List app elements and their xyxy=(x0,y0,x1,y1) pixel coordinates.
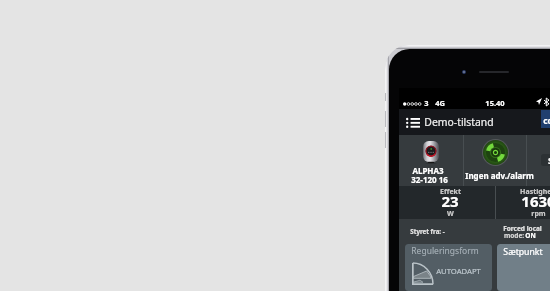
staticText: 15.40 xyxy=(485,98,505,108)
staticText: 23 xyxy=(441,191,459,211)
staticText: S xyxy=(548,154,550,166)
button[interactable]: Menu xyxy=(400,109,425,135)
staticText: Forced local xyxy=(503,224,542,233)
staticText: W xyxy=(447,209,454,219)
staticText: co xyxy=(543,115,550,127)
staticText: ON xyxy=(525,231,536,240)
staticText: Demo-tilstand xyxy=(424,115,494,129)
staticText: Styret fra: - xyxy=(410,227,445,235)
button[interactable]: Settings xyxy=(541,154,550,166)
button[interactable]: Reguleringsform xyxy=(405,244,492,291)
staticText: AUTOADAPT xyxy=(436,266,481,276)
staticText: 3 xyxy=(424,98,429,108)
staticText: Effekt xyxy=(440,187,461,197)
staticText: 4G xyxy=(435,98,445,108)
staticText: Hastighed xyxy=(520,187,550,197)
staticText: 1630 xyxy=(521,191,550,211)
staticText: Ingen adv./alarm xyxy=(465,170,534,181)
staticText: rpm xyxy=(531,209,546,219)
staticText: Sætpunkt xyxy=(503,246,543,258)
button[interactable]: Connect xyxy=(541,110,550,128)
staticText: ALPHA3 xyxy=(412,165,444,176)
button[interactable]: Sætpunkt xyxy=(497,244,550,291)
staticText: mode: xyxy=(503,231,525,240)
staticText: 32-120 16 xyxy=(411,174,448,185)
staticText: Reguleringsform xyxy=(411,245,479,257)
